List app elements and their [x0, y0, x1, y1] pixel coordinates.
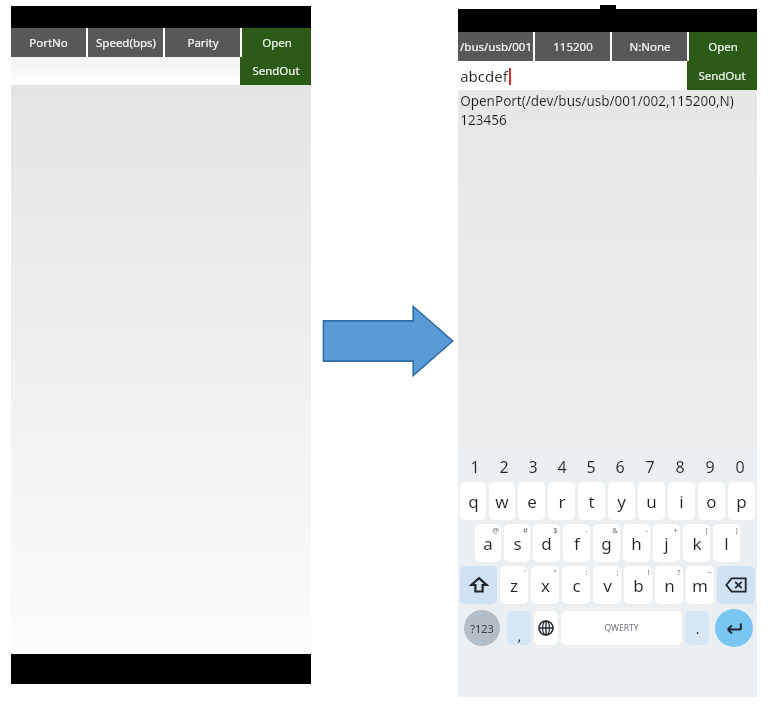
staticText: ; [616, 567, 619, 577]
staticText: 2 [499, 456, 509, 478]
staticText: Speed(bps) [96, 35, 156, 51]
button[interactable]: Open [242, 28, 311, 57]
staticText: x [541, 574, 550, 597]
button[interactable]: 8 [665, 454, 695, 480]
button[interactable]: ?123 [464, 610, 500, 646]
button[interactable]: PortNo [11, 28, 86, 57]
button[interactable]: /bus/usb/001 [458, 32, 533, 61]
staticText: SendOut [698, 68, 746, 84]
button[interactable]: Open [689, 32, 757, 61]
staticText: 123456 [460, 111, 507, 129]
button[interactable]: k [683, 524, 710, 562]
staticText: r [558, 490, 566, 513]
button[interactable]: SendOut [687, 61, 757, 90]
staticText: QWERTY [604, 622, 639, 634]
button[interactable]: f [563, 524, 590, 562]
button[interactable]: r [548, 482, 575, 520]
button[interactable]: u [638, 482, 665, 520]
staticText: 7 [645, 456, 655, 478]
staticText: e [527, 490, 537, 513]
button[interactable]: QWERTY [561, 611, 682, 645]
staticText: @ [492, 525, 499, 535]
staticText: /bus/usb/001 [460, 39, 532, 55]
staticText: q [468, 490, 479, 513]
button[interactable]: p [728, 482, 755, 520]
button[interactable]: q [460, 482, 486, 520]
staticText: w [495, 490, 509, 513]
button[interactable]: n [655, 566, 683, 604]
button[interactable]: 115200 [535, 32, 610, 61]
button[interactable]: z [500, 566, 528, 604]
button[interactable]: N:None [612, 32, 687, 61]
button[interactable]: b [624, 566, 652, 604]
button[interactable]: w [489, 482, 515, 520]
staticText: ' [524, 567, 526, 577]
button[interactable]: Backspace [717, 566, 755, 604]
button[interactable]: g [593, 524, 620, 562]
staticText: . [695, 618, 700, 638]
button[interactable]: 7 [635, 454, 665, 480]
button[interactable] [11, 57, 240, 85]
staticText: ? [677, 567, 681, 577]
staticText: b [633, 574, 644, 597]
button[interactable]: SendOut [240, 57, 311, 85]
button[interactable]: l [713, 524, 740, 562]
staticText: p [736, 490, 747, 513]
button[interactable]: 6 [605, 454, 635, 480]
staticText: + [673, 525, 678, 535]
staticText: SendOut [252, 63, 300, 79]
button[interactable]: 5 [576, 454, 605, 480]
button[interactable]: Parity [165, 28, 240, 57]
button[interactable]: Speed(bps) [88, 28, 163, 57]
button[interactable]: m [686, 566, 714, 604]
staticText: ~ [707, 567, 712, 577]
staticText: " [553, 567, 557, 577]
button[interactable]: Shift [460, 566, 497, 604]
button[interactable]: 3 [518, 454, 547, 480]
staticText: 4 [557, 456, 567, 478]
staticText: n [664, 574, 675, 597]
staticText: v [603, 574, 612, 597]
button[interactable]: c [562, 566, 590, 604]
button[interactable]: j [653, 524, 680, 562]
staticText: y [617, 490, 626, 513]
staticText: k [692, 532, 702, 555]
staticText: z [510, 574, 518, 597]
button[interactable]: a [475, 524, 501, 562]
button[interactable]: v [593, 566, 621, 604]
button[interactable]: d [533, 524, 560, 562]
button[interactable]: , [507, 611, 531, 645]
staticText: , [517, 625, 522, 645]
button[interactable]: s [504, 524, 530, 562]
button[interactable]: 0 [725, 454, 755, 480]
staticText: : [585, 567, 588, 577]
button[interactable]: 1 [460, 454, 489, 480]
staticText: - [645, 525, 648, 535]
button[interactable]: o [698, 482, 725, 520]
button[interactable]: x [531, 566, 559, 604]
button[interactable]: . [685, 611, 709, 645]
staticText: ! [647, 567, 650, 577]
button[interactable]: t [578, 482, 605, 520]
button[interactable]: h [623, 524, 650, 562]
staticText: 3 [528, 456, 538, 478]
staticText: m [692, 574, 708, 597]
staticText: l [724, 532, 729, 555]
button[interactable]: 9 [695, 454, 725, 480]
button[interactable]: e [518, 482, 545, 520]
button[interactable]: y [608, 482, 635, 520]
staticText: c [572, 574, 581, 597]
staticText: PortNo [29, 35, 68, 51]
staticText: abcdef [460, 66, 508, 86]
staticText: i [679, 490, 684, 513]
staticText: N:None [629, 39, 671, 55]
button[interactable]: Enter [715, 609, 753, 647]
staticText: t [588, 490, 595, 513]
button[interactable]: 2 [489, 454, 518, 480]
button[interactable]: Change language [534, 611, 558, 645]
button[interactable]: i [668, 482, 695, 520]
button[interactable]: 4 [547, 454, 576, 480]
staticText: ( [705, 525, 708, 535]
staticText: s [513, 532, 522, 555]
button[interactable]: abcdef [458, 61, 687, 90]
